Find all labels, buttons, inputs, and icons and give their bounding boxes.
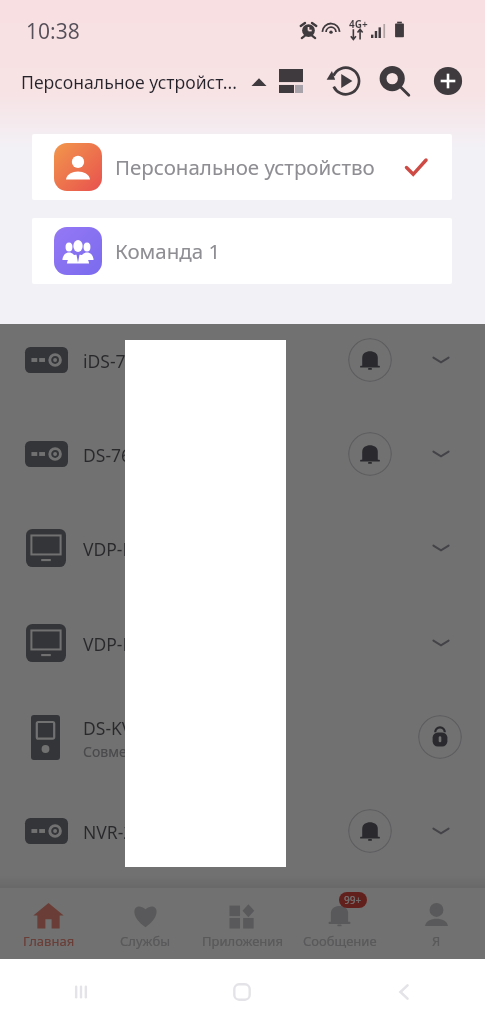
staticText: Главная	[23, 932, 75, 950]
button[interactable]: Приложения	[194, 888, 291, 959]
button[interactable]: Expand	[424, 626, 458, 660]
button[interactable]: Expand	[424, 343, 458, 377]
staticText: VDP-H2	[83, 632, 146, 656]
staticText: 10:38	[26, 17, 80, 46]
button[interactable]: Expand	[424, 437, 458, 471]
staticText: VDP-H1	[83, 537, 146, 561]
button[interactable]: Expand	[424, 531, 458, 565]
staticText: Службы	[120, 932, 171, 950]
button[interactable]: NVR-208MH-C	[0, 784, 485, 878]
button[interactable]: iDS-7204HUHI-M1/S	[0, 313, 485, 407]
staticText: DS-7604NI-K1/4P	[83, 443, 224, 467]
button[interactable]: Layout	[271, 61, 311, 101]
button[interactable]: Lock	[418, 715, 462, 759]
staticText: Приложения	[202, 932, 283, 950]
staticText: 4G+	[349, 17, 368, 31]
button[interactable]: Сообщение	[291, 888, 388, 959]
button[interactable]: VDP-H2	[0, 596, 485, 690]
button[interactable]: Персональное устройство	[32, 134, 452, 200]
button[interactable]: Search	[374, 61, 414, 101]
button[interactable]: DS-7604NI-K1/4P	[0, 407, 485, 501]
button[interactable]: Alerts	[348, 338, 392, 382]
staticText: Команда 1	[115, 237, 221, 265]
button[interactable]: Expand	[424, 814, 458, 848]
staticText: Сообщение	[303, 932, 377, 950]
button[interactable]: Playback	[324, 61, 364, 101]
button[interactable]: Службы	[97, 888, 194, 959]
staticText: Совместимо	[83, 742, 168, 761]
button[interactable]: Команда 1	[32, 218, 452, 284]
staticText: 99+	[344, 893, 362, 907]
staticText: NVR-208MH-C	[83, 820, 199, 844]
staticText: Персональное устройст...	[21, 70, 237, 94]
button[interactable]: VDP-H1	[0, 501, 485, 595]
button[interactable]: DS-KV8113	[0, 690, 485, 784]
staticText: DS-KV8113	[83, 716, 173, 740]
button[interactable]: Я	[388, 888, 485, 959]
button[interactable]: Alerts	[348, 809, 392, 853]
button[interactable]: Add	[428, 61, 468, 101]
staticText: Я	[432, 932, 441, 950]
staticText: Персональное устройство	[115, 153, 375, 181]
button[interactable]: Главная	[0, 888, 97, 959]
button[interactable]: Alerts	[348, 432, 392, 476]
staticText: iDS-7204HUHI-M1/S	[83, 349, 248, 373]
